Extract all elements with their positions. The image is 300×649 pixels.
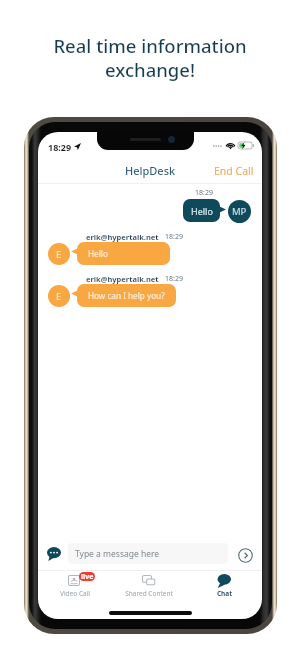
staticText: Hello [88, 248, 108, 259]
button[interactable]: E [48, 243, 70, 265]
staticText: Real time information exchange! [53, 33, 247, 82]
staticText: How can I help you? [88, 290, 165, 301]
button[interactable]: How can I help you? [77, 284, 176, 307]
staticText: Type a message here [75, 548, 160, 560]
button[interactable]: live [49, 570, 101, 611]
staticText: MP [232, 205, 247, 218]
staticText: 18:29 [195, 188, 213, 198]
staticText: live [81, 572, 94, 581]
button[interactable]: MP [228, 200, 251, 223]
staticText: Video Call [50, 589, 100, 598]
button[interactable]: HelpDesk [125, 163, 176, 178]
button[interactable]: Quick replies [47, 547, 61, 561]
staticText: erik@hypertalk.net [86, 232, 159, 242]
staticText: Chat [199, 589, 250, 598]
button[interactable]: Hello [183, 199, 220, 222]
button[interactable]: Chat [199, 570, 250, 611]
staticText: E [56, 248, 62, 261]
staticText: erik@hypertalk.net [86, 274, 159, 284]
button[interactable]: Shared Content [119, 570, 179, 611]
staticText: 18:29 [165, 232, 183, 242]
staticText: 18:29 [165, 274, 183, 284]
staticText: 18:29 [48, 141, 72, 153]
button[interactable]: Send [238, 548, 253, 563]
button[interactable]: End Call [214, 164, 254, 178]
staticText: Shared Content [119, 589, 179, 598]
button[interactable]: Hello [77, 242, 170, 265]
staticText: E [56, 290, 62, 303]
button[interactable]: E [48, 285, 70, 307]
staticText: Hello [191, 205, 213, 217]
button[interactable]: Type a message here [68, 543, 228, 564]
